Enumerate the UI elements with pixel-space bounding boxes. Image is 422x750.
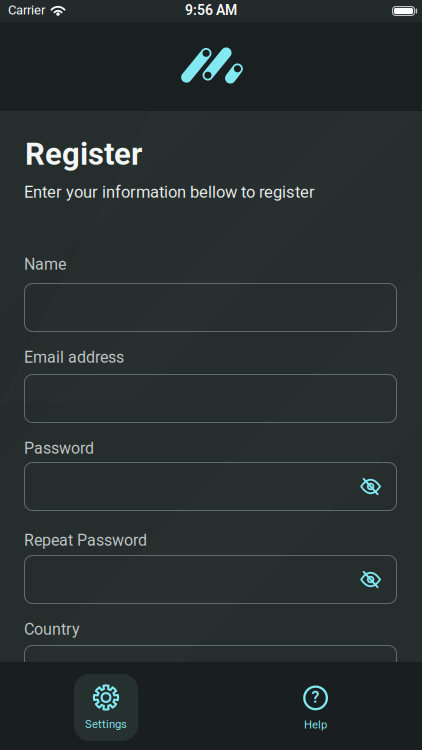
button[interactable]: Password	[24, 462, 397, 511]
staticText: Password	[24, 439, 94, 458]
staticText: Name	[24, 255, 66, 274]
staticText: Email address	[24, 348, 124, 367]
staticText: Country	[24, 620, 80, 639]
staticText: Carrier	[8, 2, 45, 18]
staticText: Register	[25, 136, 142, 172]
staticText: Repeat Password	[24, 531, 147, 550]
button[interactable]: Show password	[360, 478, 382, 495]
button[interactable]: Settings	[74, 674, 138, 741]
button[interactable]: Show password	[360, 571, 382, 588]
staticText: 9:56 AM	[185, 2, 237, 18]
button[interactable]: Repeat Password	[24, 555, 397, 604]
button[interactable]: Email address	[24, 374, 397, 423]
button[interactable]: Help	[284, 674, 348, 741]
staticText: Help	[304, 718, 327, 731]
staticText: Enter your information bellow to registe…	[24, 182, 315, 202]
button[interactable]: Name	[24, 283, 397, 332]
staticText: ?	[312, 688, 320, 707]
button[interactable]: Country	[24, 645, 397, 694]
staticText: Settings	[85, 717, 127, 731]
